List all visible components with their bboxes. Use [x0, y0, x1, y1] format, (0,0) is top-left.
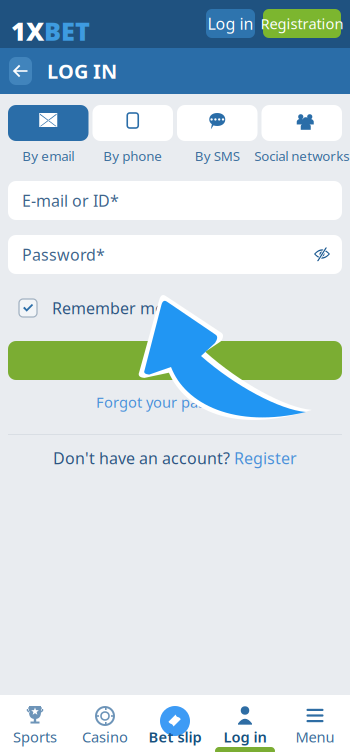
- staticText: By phone: [103, 147, 162, 165]
- button[interactable]: By SMS: [177, 105, 257, 141]
- staticText: 1X: [11, 14, 44, 48]
- staticText: LOG IN: [47, 58, 117, 84]
- staticText: Bet slip: [148, 727, 201, 746]
- staticText: BET: [44, 14, 90, 48]
- button[interactable]: Registration: [263, 9, 341, 38]
- staticText: Remember me: [52, 297, 164, 319]
- button[interactable]: Log in: [210, 695, 280, 752]
- staticText: Menu: [295, 727, 334, 746]
- staticText: Casino: [82, 727, 128, 746]
- staticText: Log in: [223, 727, 266, 746]
- button[interactable]: Log in: [8, 341, 342, 380]
- button[interactable]: Sports: [0, 695, 70, 752]
- staticText: Register: [234, 447, 297, 469]
- staticText: Log in: [207, 13, 253, 34]
- button[interactable]: Back: [9, 57, 32, 85]
- button[interactable]: Menu: [280, 695, 350, 752]
- staticText: Social networks: [254, 147, 349, 165]
- button[interactable]: Casino: [70, 695, 140, 752]
- button[interactable]: Forgot your password?: [8, 394, 342, 410]
- staticText: Sports: [13, 727, 57, 746]
- button[interactable]: Social networks: [261, 105, 342, 141]
- staticText: E-mail or ID*: [22, 190, 119, 211]
- button[interactable]: By email: [8, 105, 88, 141]
- button[interactable]: Show password: [314, 248, 330, 260]
- staticText: By SMS: [195, 147, 240, 165]
- staticText: Registration: [260, 14, 343, 33]
- button[interactable]: Bet slip: [140, 695, 210, 752]
- staticText: Don't have an account?: [53, 447, 230, 469]
- button[interactable]: Remember me: [19, 299, 37, 317]
- staticText: Forgot your password?: [96, 392, 254, 412]
- button[interactable]: By phone: [92, 105, 173, 141]
- staticText: Log in: [147, 348, 203, 373]
- staticText: By email: [22, 147, 74, 165]
- button[interactable]: Log in: [206, 9, 255, 38]
- staticText: Password*: [22, 244, 105, 265]
- button[interactable]: Register: [234, 447, 297, 469]
